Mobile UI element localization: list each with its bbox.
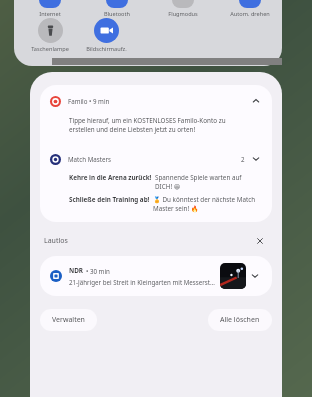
staticText: Autom. drehen (230, 10, 270, 18)
staticText: Schließe dein Training ab! (69, 195, 150, 204)
staticText: Spannende Spiele warten auf DICH! 😀 (155, 173, 252, 191)
staticText: Tippe hierauf, um ein KOSTENLOSES Familo… (69, 116, 248, 134)
button[interactable]: Verwalten (40, 309, 97, 331)
staticText: 🏅 Du könntest der nächste Match Master s… (153, 195, 256, 213)
button[interactable]: Alle löschen (208, 309, 272, 331)
staticText: 2 (241, 155, 245, 163)
staticText: Bluetooth (104, 10, 130, 18)
staticText: Alle löschen (220, 315, 260, 325)
staticText: 21-Jähriger bei Streit in Kleingarten mi… (69, 278, 215, 286)
button[interactable]: NDR (40, 256, 272, 296)
staticText: Taschenlampe (31, 45, 69, 53)
staticText: Familo • 9 min (68, 97, 110, 105)
staticText: Verwalten (52, 315, 85, 325)
staticText: Internet (39, 10, 61, 18)
button[interactable]: Taschenlampe (38, 18, 63, 43)
staticText: Kehre in die Arena zurück! (69, 173, 152, 182)
staticText: Bildschirmaufz. (86, 45, 127, 53)
staticText: Flugmodus (168, 10, 198, 18)
button[interactable]: Ausklappen (248, 151, 264, 167)
button[interactable]: Familo • 9 min (40, 85, 272, 147)
button[interactable]: Ausklappen (246, 267, 264, 285)
staticText: NDR (69, 266, 84, 275)
staticText: • 30 min (86, 267, 110, 275)
button[interactable]: Match Masters (40, 147, 272, 222)
button[interactable]: Lautlose Benachrichtigungen löschen (252, 233, 268, 249)
staticText: Match Masters (68, 155, 112, 163)
staticText: Lautlos (44, 236, 68, 246)
button[interactable]: Bildschirmaufz. (94, 18, 119, 43)
button[interactable]: Einklappen (248, 93, 264, 109)
